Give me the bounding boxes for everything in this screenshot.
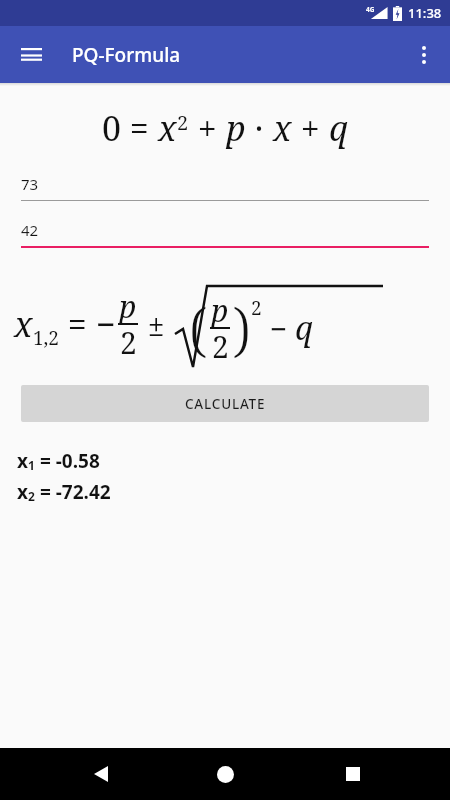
staticText: 2 [177,109,189,136]
staticText: 4G [366,5,375,14]
staticText: q [295,306,313,350]
staticText: = -0.58 [35,448,100,474]
staticText: ± [140,304,173,345]
button[interactable]: Back [86,759,116,789]
staticText: − [96,301,116,347]
staticText: x [17,448,28,474]
staticText: 2 [28,488,35,504]
button[interactable]: Recent apps [338,759,368,789]
staticText: 1,2 [33,325,59,351]
staticText: + [189,105,226,151]
staticText: 2 [120,322,137,363]
staticText: 73 [21,174,39,194]
staticText: 11:38 [408,4,442,22]
button[interactable]: Home [209,758,241,790]
button[interactable]: More options [404,35,444,75]
staticText: 1 [28,457,35,473]
staticText: ) [232,289,251,368]
button[interactable]: Open navigation drawer [11,35,51,75]
staticText: ( [189,289,208,368]
staticText: = [59,301,96,347]
staticText: p [211,290,229,331]
staticText: x [158,105,177,151]
staticText: + [292,105,329,151]
button[interactable]: CALCULATE [21,385,429,422]
staticText: p [119,286,137,327]
staticText: − [262,308,295,349]
staticText: x [273,105,292,151]
staticText: = -72.42 [35,479,111,505]
staticText: 0 = [102,105,158,151]
staticText: PQ-Formula [72,42,181,68]
staticText: 2 [251,295,262,321]
staticText: CALCULATE [185,395,266,413]
staticText: x [17,479,28,505]
staticText: p [226,105,246,151]
staticText: x [14,301,33,347]
staticText: · [246,105,273,151]
staticText: q [329,105,349,151]
staticText: 42 [21,220,39,240]
staticText: 2 [212,326,229,367]
